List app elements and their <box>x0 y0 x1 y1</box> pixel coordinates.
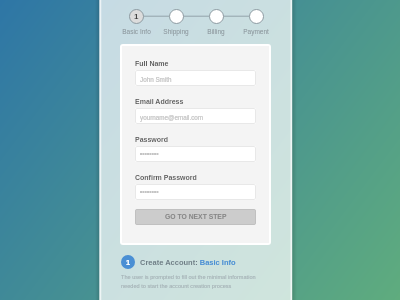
staticText: 1 <box>134 12 139 21</box>
button[interactable]: yourname@email.com <box>135 108 256 124</box>
button[interactable]: John Smith <box>135 70 256 86</box>
button[interactable]: Billing <box>196 5 236 37</box>
button[interactable]: GO TO NEXT STEP <box>135 209 256 225</box>
staticText: Confirm Password <box>135 174 197 182</box>
staticText: Password <box>135 136 169 144</box>
button[interactable] <box>135 184 256 200</box>
button[interactable]: 1 <box>121 255 236 269</box>
staticText: The user is prompted to fill out the min… <box>121 274 256 289</box>
staticText: Create Account: Basic Info <box>140 258 236 266</box>
staticText: Billing <box>207 28 225 35</box>
button[interactable]: 1 <box>116 5 156 37</box>
staticText: Email Address <box>135 98 184 106</box>
staticText: Payment <box>243 28 269 35</box>
staticText: Shipping <box>163 28 189 35</box>
staticText: yourname@email.com <box>140 114 204 121</box>
button[interactable]: Shipping <box>156 5 196 37</box>
staticText: John Smith <box>140 76 172 83</box>
button[interactable] <box>135 146 256 162</box>
button[interactable]: Payment <box>236 5 276 37</box>
staticText: Full Name <box>135 60 169 68</box>
staticText: GO TO NEXT STEP <box>165 213 227 221</box>
staticText: 1 <box>126 258 131 266</box>
staticText: Basic Info <box>122 28 151 35</box>
